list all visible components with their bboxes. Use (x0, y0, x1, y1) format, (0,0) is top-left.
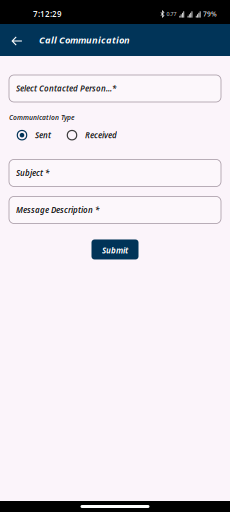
staticText: Communication Type (9, 113, 75, 122)
staticText: 7:12:29 (33, 9, 62, 19)
staticText: 0.77 (166, 10, 176, 18)
staticText: Message Description * (16, 205, 99, 215)
button[interactable]: Sent (17, 130, 51, 140)
button[interactable]: Back (4, 24, 30, 56)
staticText: Select Contacted Person...* (16, 83, 116, 94)
button[interactable]: Received (67, 130, 117, 140)
staticText: Received (85, 130, 117, 140)
button[interactable]: Submit (91, 239, 138, 259)
staticText: Sent (35, 130, 51, 140)
staticText: Submit (102, 245, 128, 256)
staticText: Subject * (16, 168, 49, 178)
staticText: Call Communication (39, 34, 130, 46)
staticText: 79% (203, 10, 217, 18)
